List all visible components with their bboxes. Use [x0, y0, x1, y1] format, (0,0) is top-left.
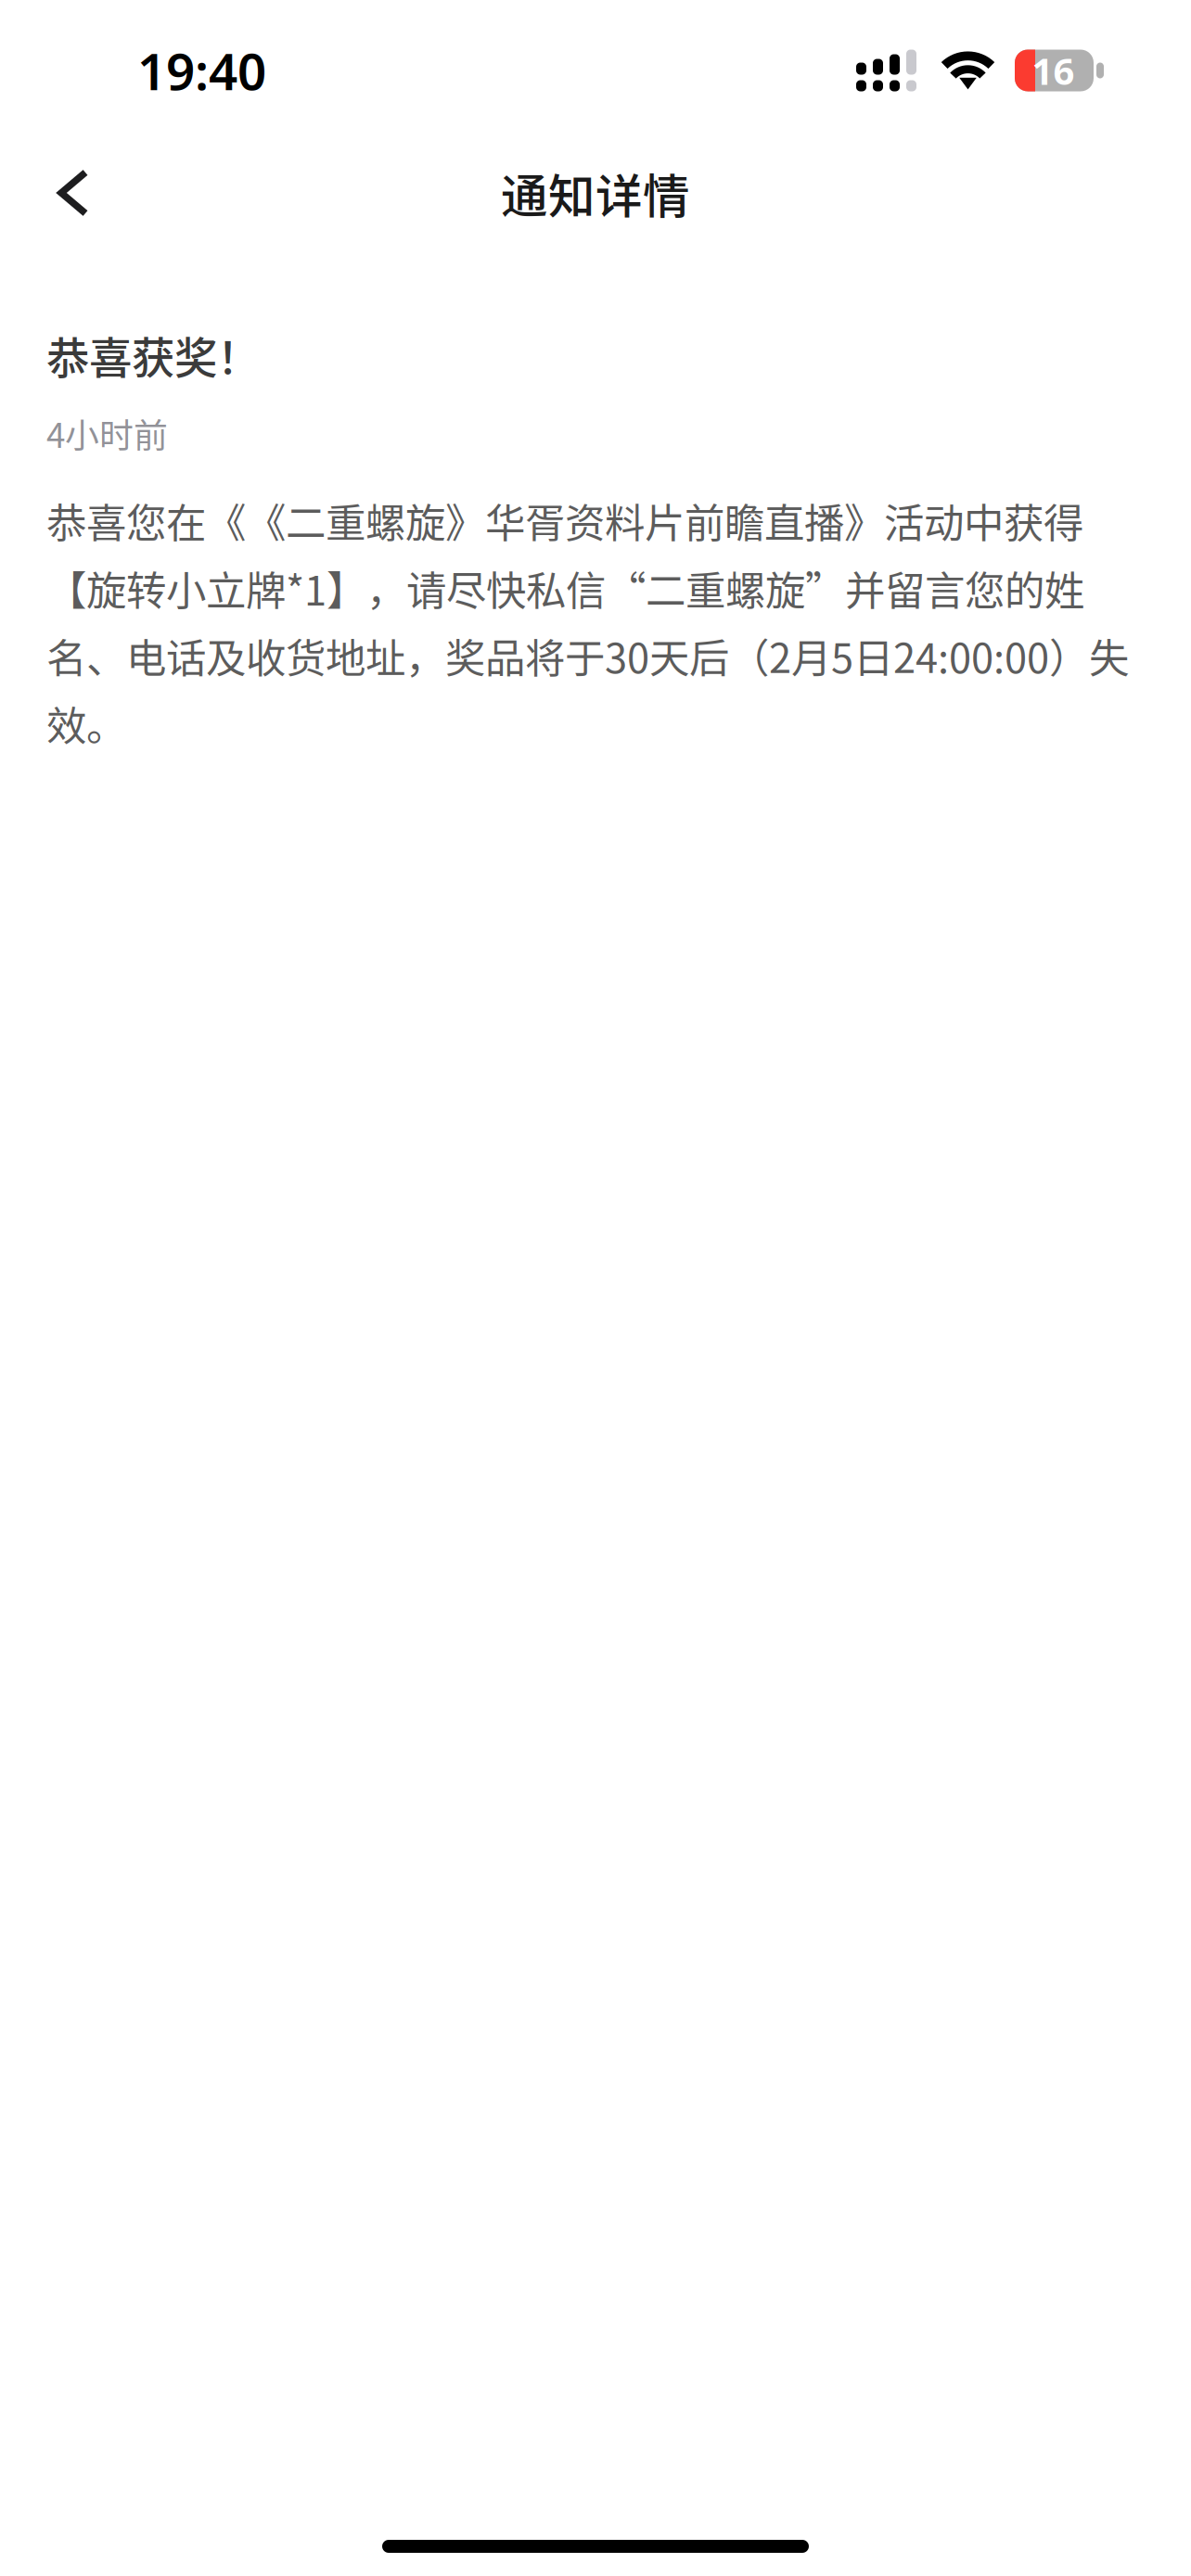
staticText: 19:40 [137, 37, 266, 104]
staticText: 16 [1032, 46, 1075, 95]
staticText: 4小时前 [46, 408, 168, 458]
staticText: 恭喜获奖！ [46, 324, 260, 386]
staticText: 通知详情 [501, 159, 690, 227]
staticText: 恭喜您在《《二重螺旋》华胥资料片前瞻直播》活动中获得【旋转小立牌*1】，请尽快私… [46, 491, 1129, 752]
button[interactable]: 返回 [0, 141, 147, 245]
